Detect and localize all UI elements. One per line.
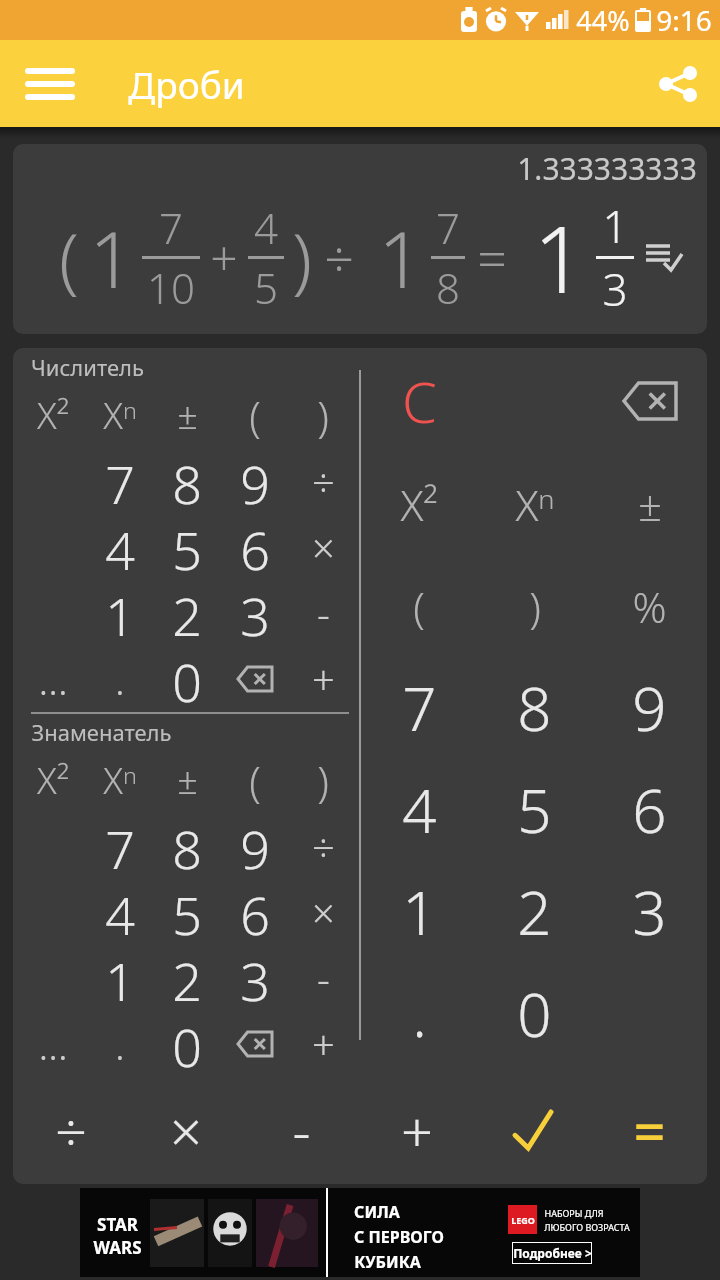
button[interactable]: 7 xyxy=(361,657,477,759)
button[interactable]: 6 xyxy=(221,879,289,945)
button[interactable]: - xyxy=(289,945,357,1011)
button[interactable]: 2 xyxy=(477,861,592,963)
button[interactable]: X² xyxy=(19,747,86,813)
button[interactable]: 1 xyxy=(86,580,153,646)
staticText: 1.333333333 xyxy=(517,148,697,189)
button[interactable]: Xⁿ xyxy=(477,453,592,555)
button[interactable]: ) xyxy=(477,555,592,657)
button[interactable]: … xyxy=(19,646,86,712)
button[interactable]: + xyxy=(289,646,357,712)
button[interactable]: % xyxy=(592,555,707,657)
button[interactable]: . xyxy=(86,646,153,712)
staticText: … xyxy=(38,652,68,706)
staticText: Подробнее > xyxy=(513,1245,592,1261)
button[interactable]: ÷ xyxy=(13,1076,128,1184)
button[interactable]: Xⁿ xyxy=(86,382,153,448)
staticText: 1 xyxy=(89,205,134,311)
button[interactable]: 5 xyxy=(153,879,221,945)
staticText: 7 xyxy=(159,199,183,256)
button[interactable]: 5 xyxy=(477,759,592,861)
button[interactable]: + xyxy=(359,1076,475,1184)
button[interactable]: × xyxy=(289,879,357,945)
staticText: 9:16 xyxy=(656,1,712,39)
staticText: … xyxy=(38,1017,68,1071)
button[interactable] xyxy=(221,1011,289,1076)
button[interactable]: 7 xyxy=(86,448,153,514)
button[interactable]: C xyxy=(361,348,477,453)
staticText: × xyxy=(312,885,335,939)
staticText: WARS xyxy=(93,1236,142,1259)
button[interactable]: ( xyxy=(221,747,289,813)
button[interactable]: 0 xyxy=(153,646,221,712)
button[interactable] xyxy=(592,348,707,453)
staticText: 8 xyxy=(517,667,552,749)
button[interactable]: 6 xyxy=(221,514,289,580)
staticText: 7 xyxy=(436,199,460,256)
button[interactable]: 8 xyxy=(477,657,592,759)
staticText: Xⁿ xyxy=(515,476,555,533)
button[interactable]: + xyxy=(289,1011,357,1076)
button[interactable]: 1 xyxy=(361,861,477,963)
button[interactable]: × xyxy=(289,514,357,580)
button[interactable]: STAR xyxy=(80,1188,640,1277)
button[interactable]: . xyxy=(86,1011,153,1076)
button[interactable]: ) xyxy=(289,382,357,448)
button[interactable]: X² xyxy=(19,382,86,448)
button[interactable]: 4 xyxy=(86,514,153,580)
button[interactable]: 8 xyxy=(153,448,221,514)
button[interactable]: - xyxy=(243,1076,359,1184)
button[interactable]: × xyxy=(128,1076,243,1184)
staticText: 9 xyxy=(240,813,270,879)
button[interactable]: = xyxy=(591,1076,707,1184)
staticText: ÷ xyxy=(312,819,335,873)
button[interactable]: 4 xyxy=(361,759,477,861)
staticText: Знаменатель xyxy=(31,717,172,747)
button[interactable]: ± xyxy=(153,382,221,448)
button[interactable]: 4 xyxy=(86,879,153,945)
button[interactable]: ÷ xyxy=(289,813,357,879)
button[interactable]: 2 xyxy=(153,580,221,646)
button[interactable]: Xⁿ xyxy=(86,747,153,813)
button[interactable]: . xyxy=(361,963,477,1065)
button[interactable] xyxy=(0,40,100,127)
button[interactable]: 3 xyxy=(221,580,289,646)
button[interactable]: ± xyxy=(153,747,221,813)
button[interactable]: 7 xyxy=(86,813,153,879)
button[interactable]: 9 xyxy=(221,448,289,514)
button[interactable]: 0 xyxy=(477,963,592,1065)
button[interactable]: Подробнее > xyxy=(512,1242,592,1264)
button[interactable]: X² xyxy=(361,453,477,555)
button[interactable]: 2 xyxy=(153,945,221,1011)
button[interactable]: 8 xyxy=(153,813,221,879)
button[interactable]: ) xyxy=(289,747,357,813)
button[interactable]: 5 xyxy=(153,514,221,580)
button[interactable]: - xyxy=(289,580,357,646)
button[interactable] xyxy=(636,40,720,127)
button[interactable]: ± xyxy=(592,453,707,555)
staticText: НАБОРЫ ДЛЯ xyxy=(544,1207,604,1219)
button[interactable]: ÷ xyxy=(289,448,357,514)
staticText: 8 xyxy=(172,813,202,879)
button[interactable] xyxy=(221,646,289,712)
button[interactable]: … xyxy=(19,1011,86,1076)
staticText: C xyxy=(402,363,437,439)
button[interactable]: 9 xyxy=(221,813,289,879)
button[interactable]: 1 xyxy=(86,945,153,1011)
button[interactable] xyxy=(475,1076,591,1184)
button[interactable]: 0 xyxy=(153,1011,221,1076)
button[interactable]: 9 xyxy=(592,657,707,759)
button[interactable]: 3 xyxy=(592,861,707,963)
button[interactable]: 3 xyxy=(221,945,289,1011)
staticText: 8 xyxy=(172,448,202,514)
staticText: ( xyxy=(413,578,425,635)
button[interactable]: ( xyxy=(221,382,289,448)
button[interactable]: ( xyxy=(361,555,477,657)
button[interactable]: 6 xyxy=(592,759,707,861)
